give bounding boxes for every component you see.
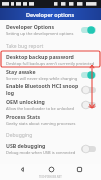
button[interactable]: Desktop backup password xyxy=(0,52,101,67)
staticText: Stay awake xyxy=(6,68,36,75)
button[interactable]: Toggle xyxy=(81,71,96,79)
button[interactable]: Developer Options xyxy=(0,22,101,37)
staticText: Desktop backup password xyxy=(6,53,74,60)
button[interactable]: Enable Bluetooth HCI snoop log xyxy=(0,82,101,97)
button[interactable]: USB debugging xyxy=(0,141,101,156)
button[interactable]: Toggle xyxy=(81,26,96,34)
button[interactable]: Take bug report xyxy=(0,41,101,52)
button[interactable]: Process Stats xyxy=(0,112,101,127)
staticText: Screen will never sleep while charging xyxy=(6,76,78,81)
staticText: Geeky stats about running processes xyxy=(6,121,76,126)
button[interactable]: Home xyxy=(44,164,58,175)
staticText: Allow the bootloader to be unlocked xyxy=(6,106,75,111)
staticText: Setting up the development options xyxy=(6,31,74,36)
button[interactable]: Back xyxy=(15,164,29,175)
staticText: TECHFIXHUBS.NET xyxy=(39,175,62,179)
button[interactable]: OEM unlocking xyxy=(0,97,101,112)
button[interactable]: Toggle xyxy=(81,101,96,109)
staticText: Developer options xyxy=(26,11,75,18)
button[interactable]: Debugging xyxy=(0,130,101,141)
staticText: Developer Options xyxy=(6,23,55,30)
button[interactable]: Stay awake xyxy=(0,67,101,82)
button[interactable]: Toggle xyxy=(81,86,96,94)
staticText: Desktop full backups aren't currently pr… xyxy=(6,61,95,66)
staticText: Process Stats xyxy=(6,113,41,120)
staticText: Debug mode when USB is connected xyxy=(6,150,76,155)
staticText: Debugging xyxy=(6,132,33,139)
button[interactable]: Toggle xyxy=(81,145,96,153)
button[interactable]: Recents xyxy=(72,164,86,175)
staticText: Take bug report xyxy=(6,43,44,50)
staticText: Enable Bluetooth HCI snoop log xyxy=(6,82,81,96)
staticText: OEM unlocking xyxy=(6,98,45,105)
staticText: USB debugging xyxy=(6,142,46,149)
